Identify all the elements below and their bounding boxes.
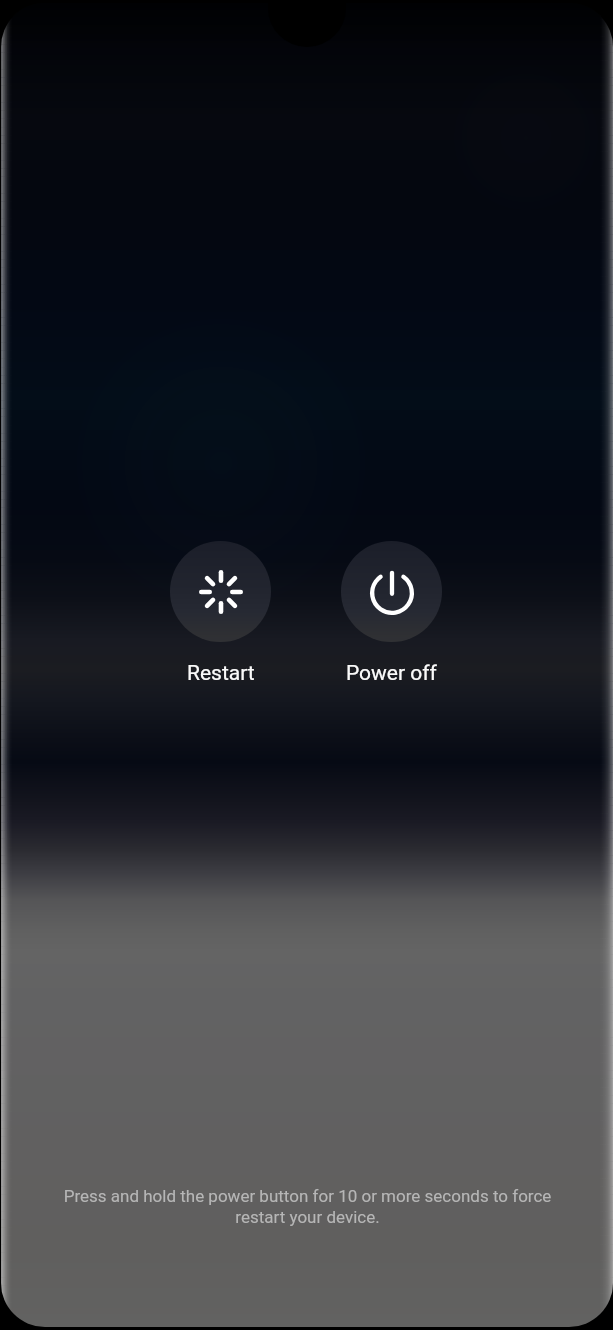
staticText: Restart [187,661,255,686]
button[interactable]: Restart [170,541,271,642]
button[interactable]: Power off [341,541,442,642]
staticText: Press and hold the power button for 10 o… [55,1186,560,1227]
staticText: Power off [346,661,437,686]
